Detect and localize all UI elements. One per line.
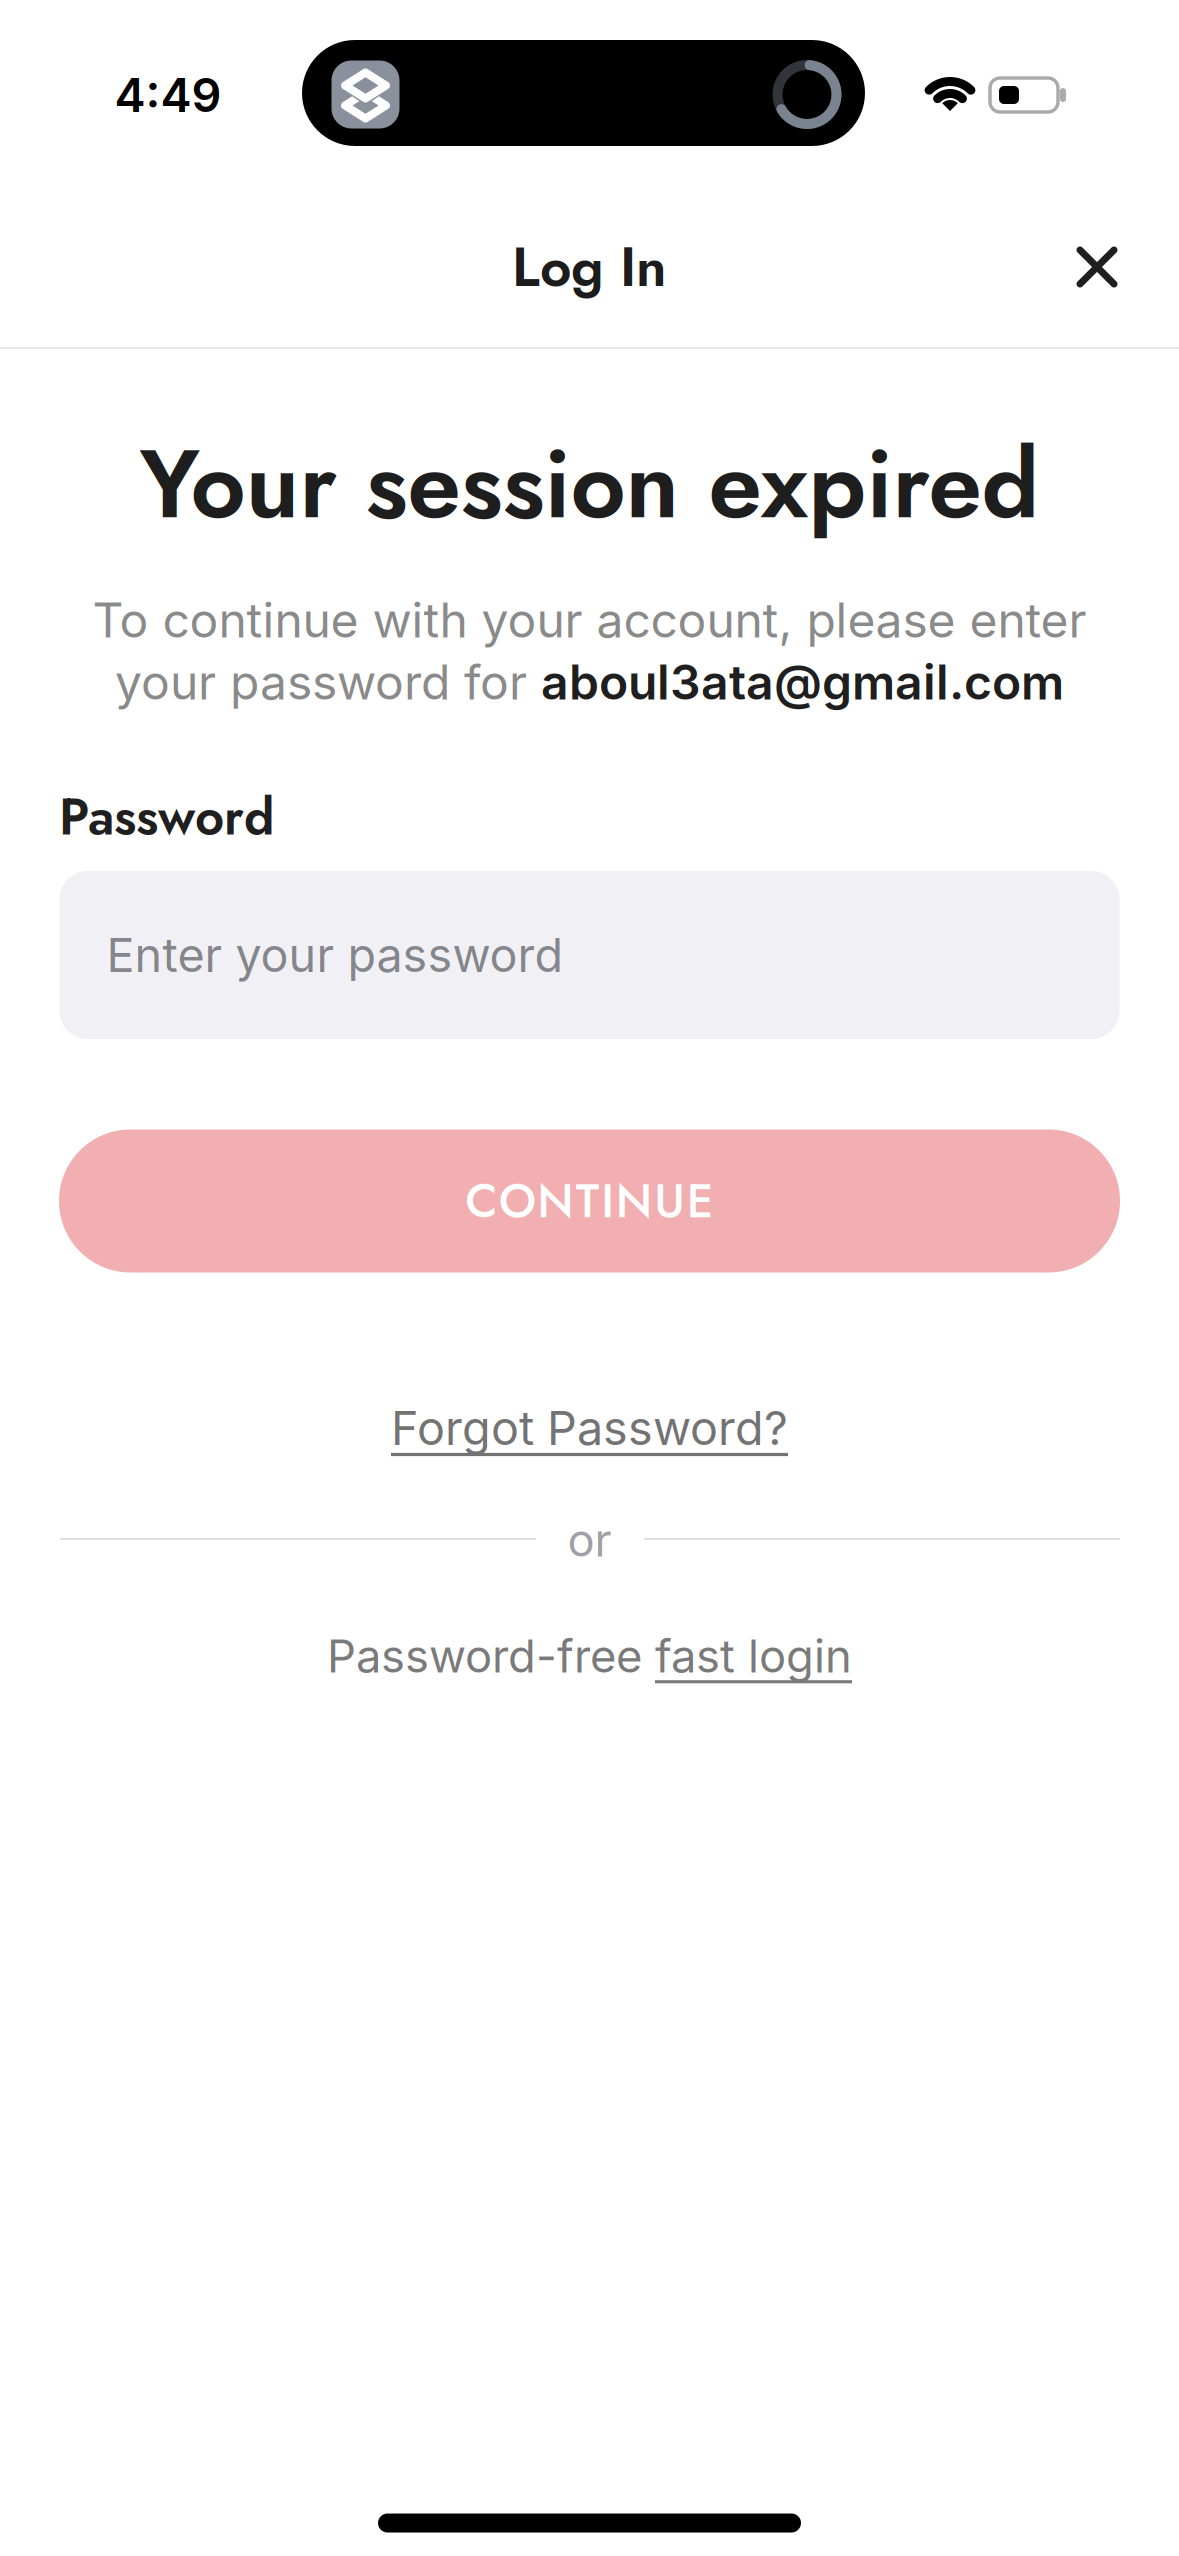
staticText: your password for <box>115 653 541 711</box>
staticText: Log In <box>512 227 667 306</box>
staticText: Forgot Password? <box>391 1400 788 1456</box>
staticText: 4:49 <box>114 67 221 123</box>
staticText: Password <box>59 780 275 854</box>
button[interactable]: Password-free <box>327 1629 852 1683</box>
button[interactable]: Close <box>1076 246 1118 288</box>
staticText: fast login <box>655 1629 852 1683</box>
staticText: Enter your password <box>106 927 563 983</box>
staticText: aboul3ata@gmail.com <box>541 653 1064 711</box>
staticText: CONTINUE <box>465 1167 714 1235</box>
staticText: To continue with your account, please en… <box>92 591 1086 649</box>
staticText: Password-free <box>327 1629 655 1683</box>
button[interactable]: Forgot Password? <box>391 1400 788 1456</box>
button[interactable]: CONTINUE <box>59 1129 1120 1272</box>
staticText: Your session expired <box>139 415 1039 553</box>
staticText: or <box>567 1513 611 1567</box>
